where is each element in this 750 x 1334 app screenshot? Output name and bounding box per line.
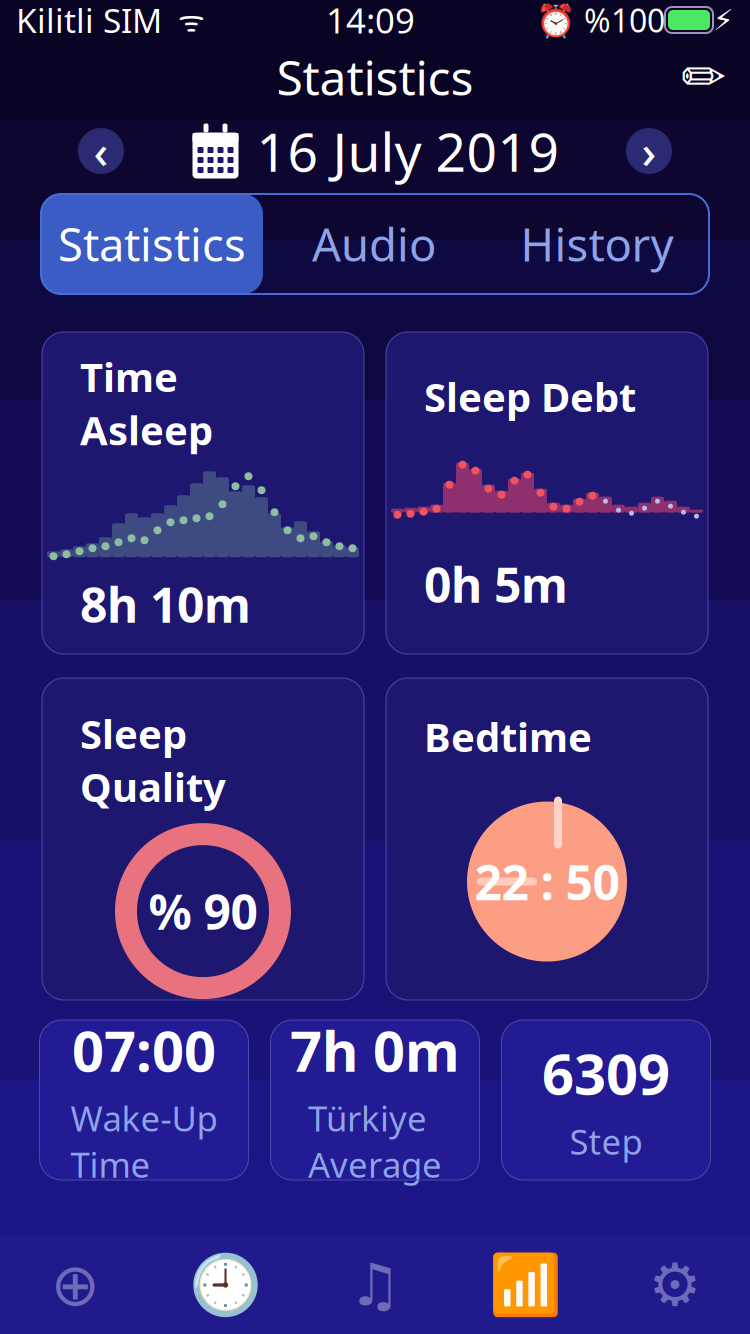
- staticText: ›: [641, 121, 656, 181]
- staticText: 🕘: [188, 1251, 261, 1318]
- staticText: Statistics: [58, 214, 246, 274]
- staticText: 07:00: [72, 1013, 216, 1087]
- staticText: ⚙: [648, 1252, 701, 1318]
- button[interactable]: Previous day: [78, 128, 124, 174]
- button[interactable]: Edit: [674, 47, 734, 107]
- staticText: ‹: [93, 121, 108, 181]
- staticText: % 90: [148, 879, 257, 943]
- button[interactable]: History: [485, 194, 709, 294]
- staticText: 16 July 2019: [256, 116, 559, 186]
- button[interactable]: Audio: [263, 194, 485, 294]
- staticText: Time Asleep: [80, 350, 213, 456]
- staticText: ✏︎: [681, 47, 726, 107]
- button[interactable]: Audio: [300, 1236, 450, 1334]
- button[interactable]: Sleep Debt: [386, 332, 708, 654]
- staticText: 22 : 50: [474, 850, 619, 913]
- staticText: ᯤ: [162, 0, 205, 39]
- button[interactable]: Sleep Quality: [42, 678, 364, 1000]
- staticText: History: [520, 214, 673, 274]
- button[interactable]: Statistics: [450, 1236, 600, 1334]
- staticText: ⏰ %100: [536, 0, 665, 41]
- staticText: Step: [569, 1118, 642, 1164]
- staticText: ⊕: [50, 1252, 99, 1318]
- button[interactable]: Time Asleep: [42, 332, 364, 654]
- staticText: Statistics: [276, 45, 473, 109]
- button[interactable]: Goals: [0, 1236, 150, 1334]
- button[interactable]: 07:00: [39, 1020, 248, 1180]
- button[interactable]: Bedtime: [386, 678, 708, 1000]
- button[interactable]: Next day: [626, 128, 672, 174]
- staticText: 6309: [542, 1036, 670, 1110]
- button[interactable]: 6309: [501, 1020, 710, 1180]
- staticText: 7h 0m: [290, 1013, 460, 1087]
- staticText: Bedtime: [424, 710, 592, 763]
- staticText: Audio: [312, 214, 436, 274]
- staticText: 0h 5m: [424, 552, 568, 616]
- staticText: ♫: [348, 1252, 401, 1318]
- staticText: 14:09: [326, 0, 415, 43]
- button[interactable]: Settings: [600, 1236, 750, 1334]
- staticText: 📶: [488, 1251, 561, 1318]
- staticText: Kilitli SIM: [16, 0, 162, 42]
- staticText: Wake-Up Time: [70, 1095, 217, 1187]
- staticText: Sleep Debt: [424, 370, 636, 423]
- button[interactable]: History: [150, 1236, 300, 1334]
- button[interactable]: 7h 0m: [270, 1020, 479, 1180]
- staticText: 8h 10m: [80, 572, 251, 636]
- staticText: Sleep Quality: [80, 707, 226, 813]
- staticText: Türkiye Average: [308, 1095, 442, 1187]
- staticText: ⚡︎: [713, 3, 734, 37]
- button[interactable]: Statistics: [41, 194, 263, 294]
